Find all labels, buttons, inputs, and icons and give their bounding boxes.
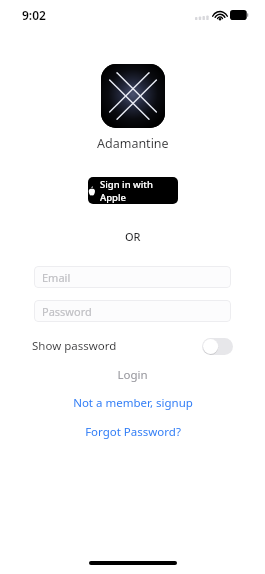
button[interactable]: Show password (32, 334, 233, 358)
button[interactable]: Not a member, signup (0, 395, 265, 411)
button[interactable]: Sign in with Apple (88, 177, 178, 204)
staticText: Not a member, signup (73, 395, 193, 411)
staticText: Show password (32, 338, 117, 354)
staticText: OR (125, 229, 141, 244)
button[interactable]: Login (0, 367, 265, 383)
staticText: Password (42, 304, 92, 319)
button[interactable]: Forgot Password? (0, 424, 265, 440)
staticText: Forgot Password? (85, 424, 181, 440)
staticText: Adamantine (97, 135, 169, 152)
staticText: Login (117, 367, 148, 383)
button[interactable]: Email (34, 266, 231, 288)
button[interactable]: Adamantine app icon (101, 64, 165, 128)
staticText: Sign in with Apple (100, 178, 178, 204)
staticText: 9:02 (22, 7, 46, 23)
staticText: Email (42, 270, 71, 285)
button[interactable]: Password (34, 300, 231, 322)
